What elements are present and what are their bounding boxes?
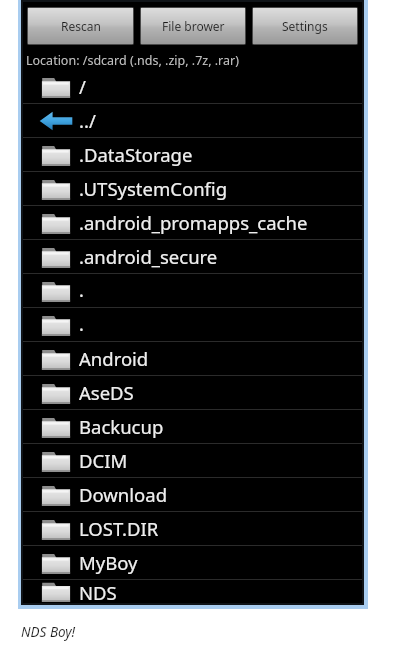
button[interactable]: / xyxy=(23,70,362,103)
button[interactable]: Rescan xyxy=(28,8,133,44)
button[interactable]: LOST.DIR xyxy=(23,512,362,545)
button[interactable]: Backucup xyxy=(23,410,362,443)
staticText: AseDS xyxy=(79,380,134,405)
button[interactable]: NDS xyxy=(23,580,362,603)
button[interactable]: MyBoy xyxy=(23,546,362,579)
staticText: .android_secure xyxy=(79,244,218,269)
staticText: Rescan xyxy=(61,18,101,34)
button[interactable]: ../ xyxy=(23,104,362,137)
button[interactable]: Settings xyxy=(253,8,357,44)
button[interactable]: . xyxy=(23,274,362,307)
staticText: Backucup xyxy=(79,414,164,439)
staticText: NDS xyxy=(79,580,117,603)
button[interactable]: AseDS xyxy=(23,376,362,409)
staticText: NDS Boy! xyxy=(21,623,76,641)
staticText: .android_promapps_cache xyxy=(79,210,308,235)
staticText: . xyxy=(79,312,84,337)
staticText: .DataStorage xyxy=(79,142,193,167)
button[interactable]: Android xyxy=(23,342,362,375)
button[interactable]: .android_promapps_cache xyxy=(23,206,362,239)
staticText: Settings xyxy=(282,18,328,34)
button[interactable]: . xyxy=(23,308,362,341)
staticText: Android xyxy=(79,346,149,371)
staticText: LOST.DIR xyxy=(79,516,159,541)
button[interactable]: .DataStorage xyxy=(23,138,362,171)
staticText: / xyxy=(79,74,86,99)
button[interactable]: Download xyxy=(23,478,362,511)
button[interactable]: File brower xyxy=(141,8,245,44)
staticText: ../ xyxy=(79,108,96,133)
staticText: Location: /sdcard (.nds, .zip, .7z, .rar… xyxy=(26,52,239,69)
staticText: . xyxy=(79,278,84,303)
staticText: MyBoy xyxy=(79,550,138,575)
staticText: Download xyxy=(79,482,168,507)
staticText: .UTSystemConfig xyxy=(79,176,228,201)
button[interactable]: .android_secure xyxy=(23,240,362,273)
button[interactable]: .UTSystemConfig xyxy=(23,172,362,205)
button[interactable]: DCIM xyxy=(23,444,362,477)
staticText: DCIM xyxy=(79,448,128,473)
staticText: File brower xyxy=(162,18,225,34)
